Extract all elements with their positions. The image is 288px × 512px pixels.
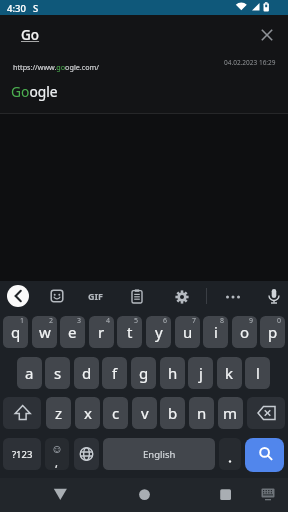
staticText: 7 xyxy=(192,316,197,326)
staticText: w xyxy=(39,322,51,342)
button[interactable]: x xyxy=(75,397,100,429)
button[interactable] xyxy=(3,397,41,429)
staticText: S xyxy=(33,2,39,15)
button[interactable] xyxy=(132,482,157,507)
staticText: k xyxy=(225,363,234,383)
staticText: 8 xyxy=(220,316,225,326)
button[interactable] xyxy=(173,288,191,306)
staticText: x xyxy=(84,403,92,423)
button[interactable] xyxy=(247,397,285,429)
staticText: g xyxy=(139,363,149,383)
staticText: d xyxy=(82,363,92,383)
button[interactable]: n xyxy=(189,397,214,429)
staticText: Go xyxy=(21,26,40,44)
staticText: GIF xyxy=(88,290,103,302)
button[interactable]: q xyxy=(3,316,28,348)
staticText: 9 xyxy=(249,316,254,326)
button[interactable]: k xyxy=(217,357,242,389)
staticText: 4:30 xyxy=(7,2,26,15)
button[interactable]: r xyxy=(89,316,114,348)
staticText: ?123 xyxy=(12,448,33,461)
button[interactable]: v xyxy=(132,397,157,429)
button[interactable]: b xyxy=(160,397,185,429)
staticText: r xyxy=(98,322,105,342)
staticText: b xyxy=(168,403,178,423)
staticText: 6 xyxy=(163,316,168,326)
staticText: https://www.google.com/ xyxy=(13,62,99,72)
button[interactable] xyxy=(48,482,72,506)
staticText: o xyxy=(240,322,250,342)
staticText: y xyxy=(155,322,163,342)
button[interactable]: g xyxy=(131,357,156,389)
button[interactable] xyxy=(0,55,288,113)
staticText: English xyxy=(143,448,176,461)
button[interactable]: c xyxy=(103,397,128,429)
staticText: s xyxy=(54,363,62,383)
button[interactable] xyxy=(265,286,283,306)
button[interactable]: GIF xyxy=(84,288,106,304)
button[interactable] xyxy=(74,438,99,470)
staticText: c xyxy=(112,403,120,423)
staticText: h xyxy=(168,363,178,383)
button[interactable] xyxy=(219,438,241,470)
staticText: z xyxy=(55,403,63,423)
staticText: j xyxy=(199,363,203,383)
staticText: 2 xyxy=(49,316,54,326)
button[interactable]: z xyxy=(46,397,71,429)
button[interactable]: i xyxy=(203,316,228,348)
button[interactable] xyxy=(224,288,242,306)
button[interactable]: d xyxy=(74,357,99,389)
button[interactable] xyxy=(48,287,66,305)
staticText: 4 xyxy=(106,316,111,326)
staticText: m xyxy=(223,403,238,423)
button[interactable]: l xyxy=(245,357,270,389)
button[interactable]: h xyxy=(160,357,185,389)
staticText: 5 xyxy=(134,316,139,326)
button[interactable]: a xyxy=(17,357,42,389)
button[interactable]: e xyxy=(60,316,85,348)
staticText: v xyxy=(141,403,149,423)
staticText: f xyxy=(112,363,118,383)
button[interactable]: y xyxy=(146,316,171,348)
staticText: n xyxy=(197,403,207,423)
staticText: , xyxy=(55,455,58,470)
staticText: p xyxy=(268,322,278,342)
button[interactable]: , xyxy=(45,438,69,470)
button[interactable] xyxy=(255,23,279,47)
staticText: i xyxy=(214,322,218,342)
button[interactable]: t xyxy=(117,316,142,348)
button[interactable] xyxy=(245,438,284,472)
button[interactable]: u xyxy=(175,316,200,348)
staticText: 1 xyxy=(20,316,25,326)
button[interactable]: s xyxy=(45,357,70,389)
button[interactable]: English xyxy=(103,438,215,470)
button[interactable] xyxy=(258,484,278,504)
staticText: l xyxy=(256,363,260,383)
staticText: 3 xyxy=(77,316,82,326)
staticText: u xyxy=(183,322,193,342)
staticText: e xyxy=(68,322,77,342)
button[interactable]: m xyxy=(218,397,243,429)
button[interactable]: p xyxy=(260,316,285,348)
button[interactable]: o xyxy=(232,316,257,348)
button[interactable] xyxy=(213,482,238,507)
staticText: a xyxy=(25,363,34,383)
staticText: t xyxy=(127,322,133,342)
button[interactable] xyxy=(128,287,146,305)
button[interactable]: f xyxy=(102,357,127,389)
staticText: 04.02.2023 16:29 xyxy=(224,58,276,67)
button[interactable]: w xyxy=(32,316,57,348)
staticText: Google xyxy=(11,82,58,101)
button[interactable]: ?123 xyxy=(3,438,41,470)
staticText: 0 xyxy=(277,316,282,326)
button[interactable] xyxy=(7,285,29,307)
button[interactable]: j xyxy=(188,357,213,389)
staticText: q xyxy=(11,322,21,342)
